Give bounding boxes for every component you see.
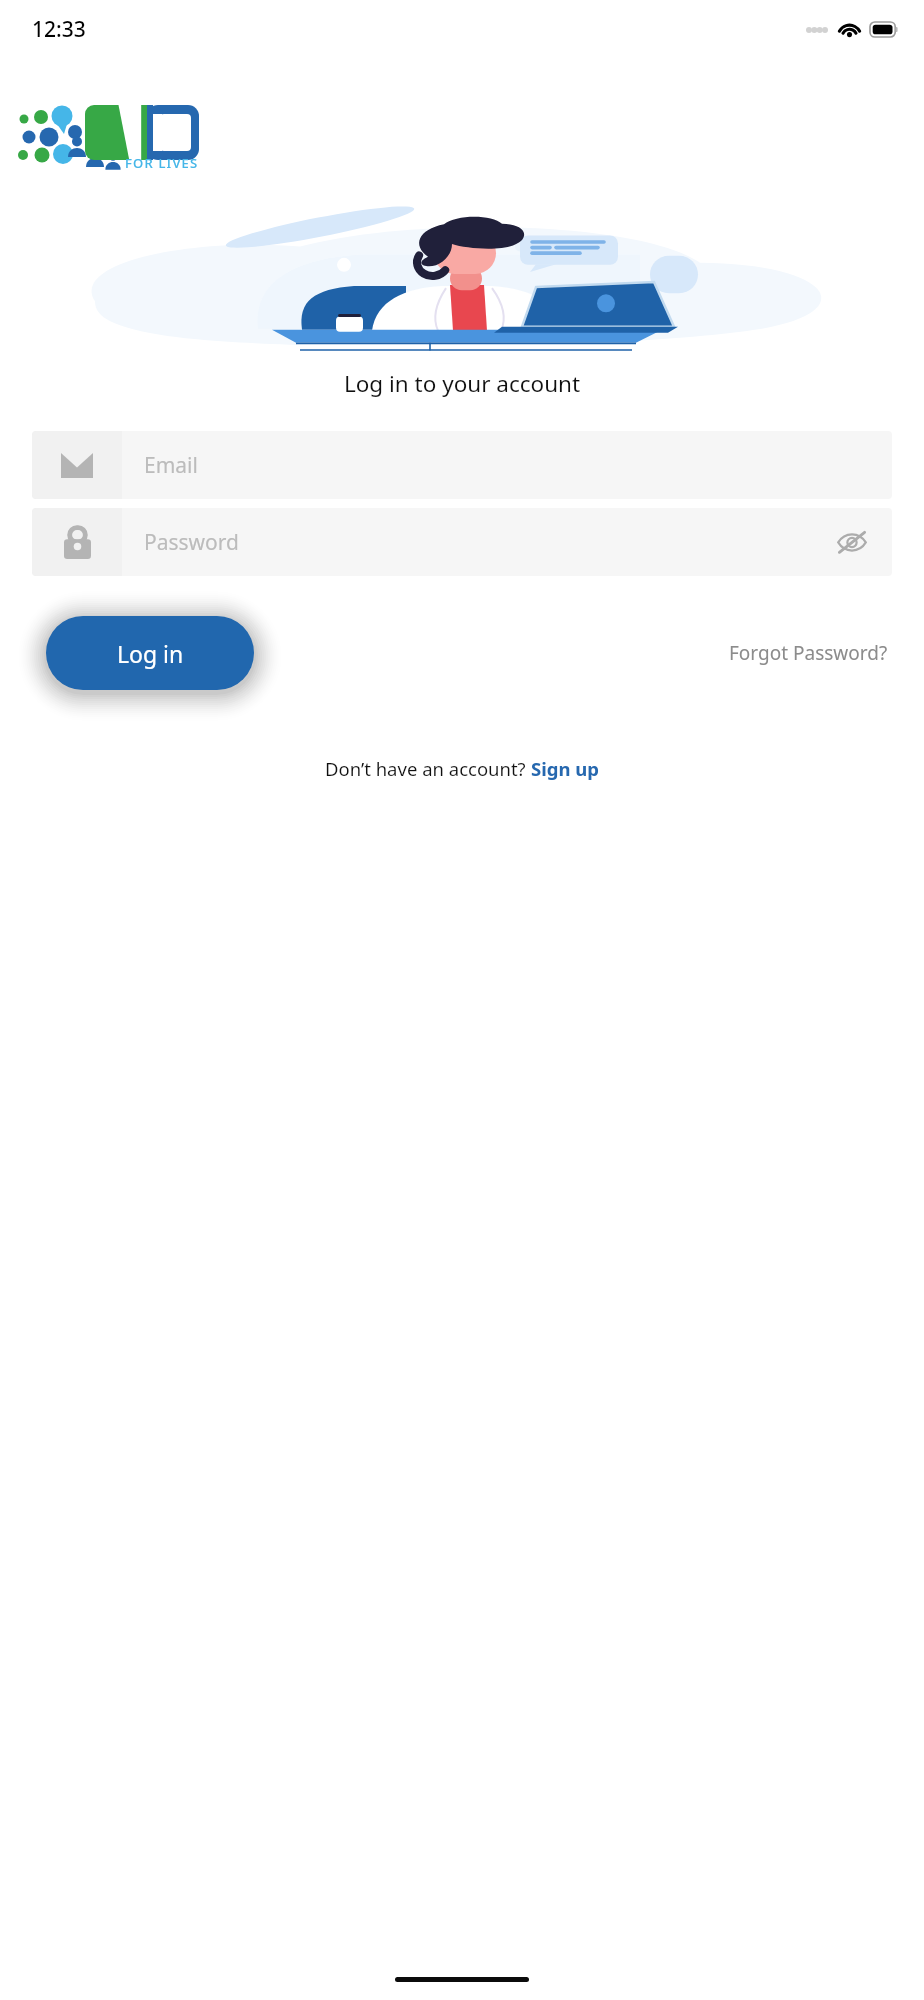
staticText: Forgot Password?	[729, 640, 888, 666]
staticText: 12:33	[32, 15, 86, 44]
button[interactable]: Show password	[834, 524, 870, 560]
staticText: Don’t have an account?	[325, 756, 531, 781]
button[interactable]: Forgot Password?	[725, 632, 892, 674]
staticText: Email	[144, 451, 892, 480]
staticText: Log in to your account	[0, 368, 924, 399]
button[interactable]: Password	[32, 508, 892, 576]
staticText: FOR LIVES	[125, 154, 199, 172]
staticText: Sign up	[531, 756, 599, 781]
button[interactable]: Sign up	[531, 756, 599, 781]
staticText: Password	[144, 528, 834, 557]
button[interactable]: Log in	[46, 616, 254, 690]
button[interactable]: Email	[32, 431, 892, 499]
staticText: Log in	[117, 638, 184, 669]
